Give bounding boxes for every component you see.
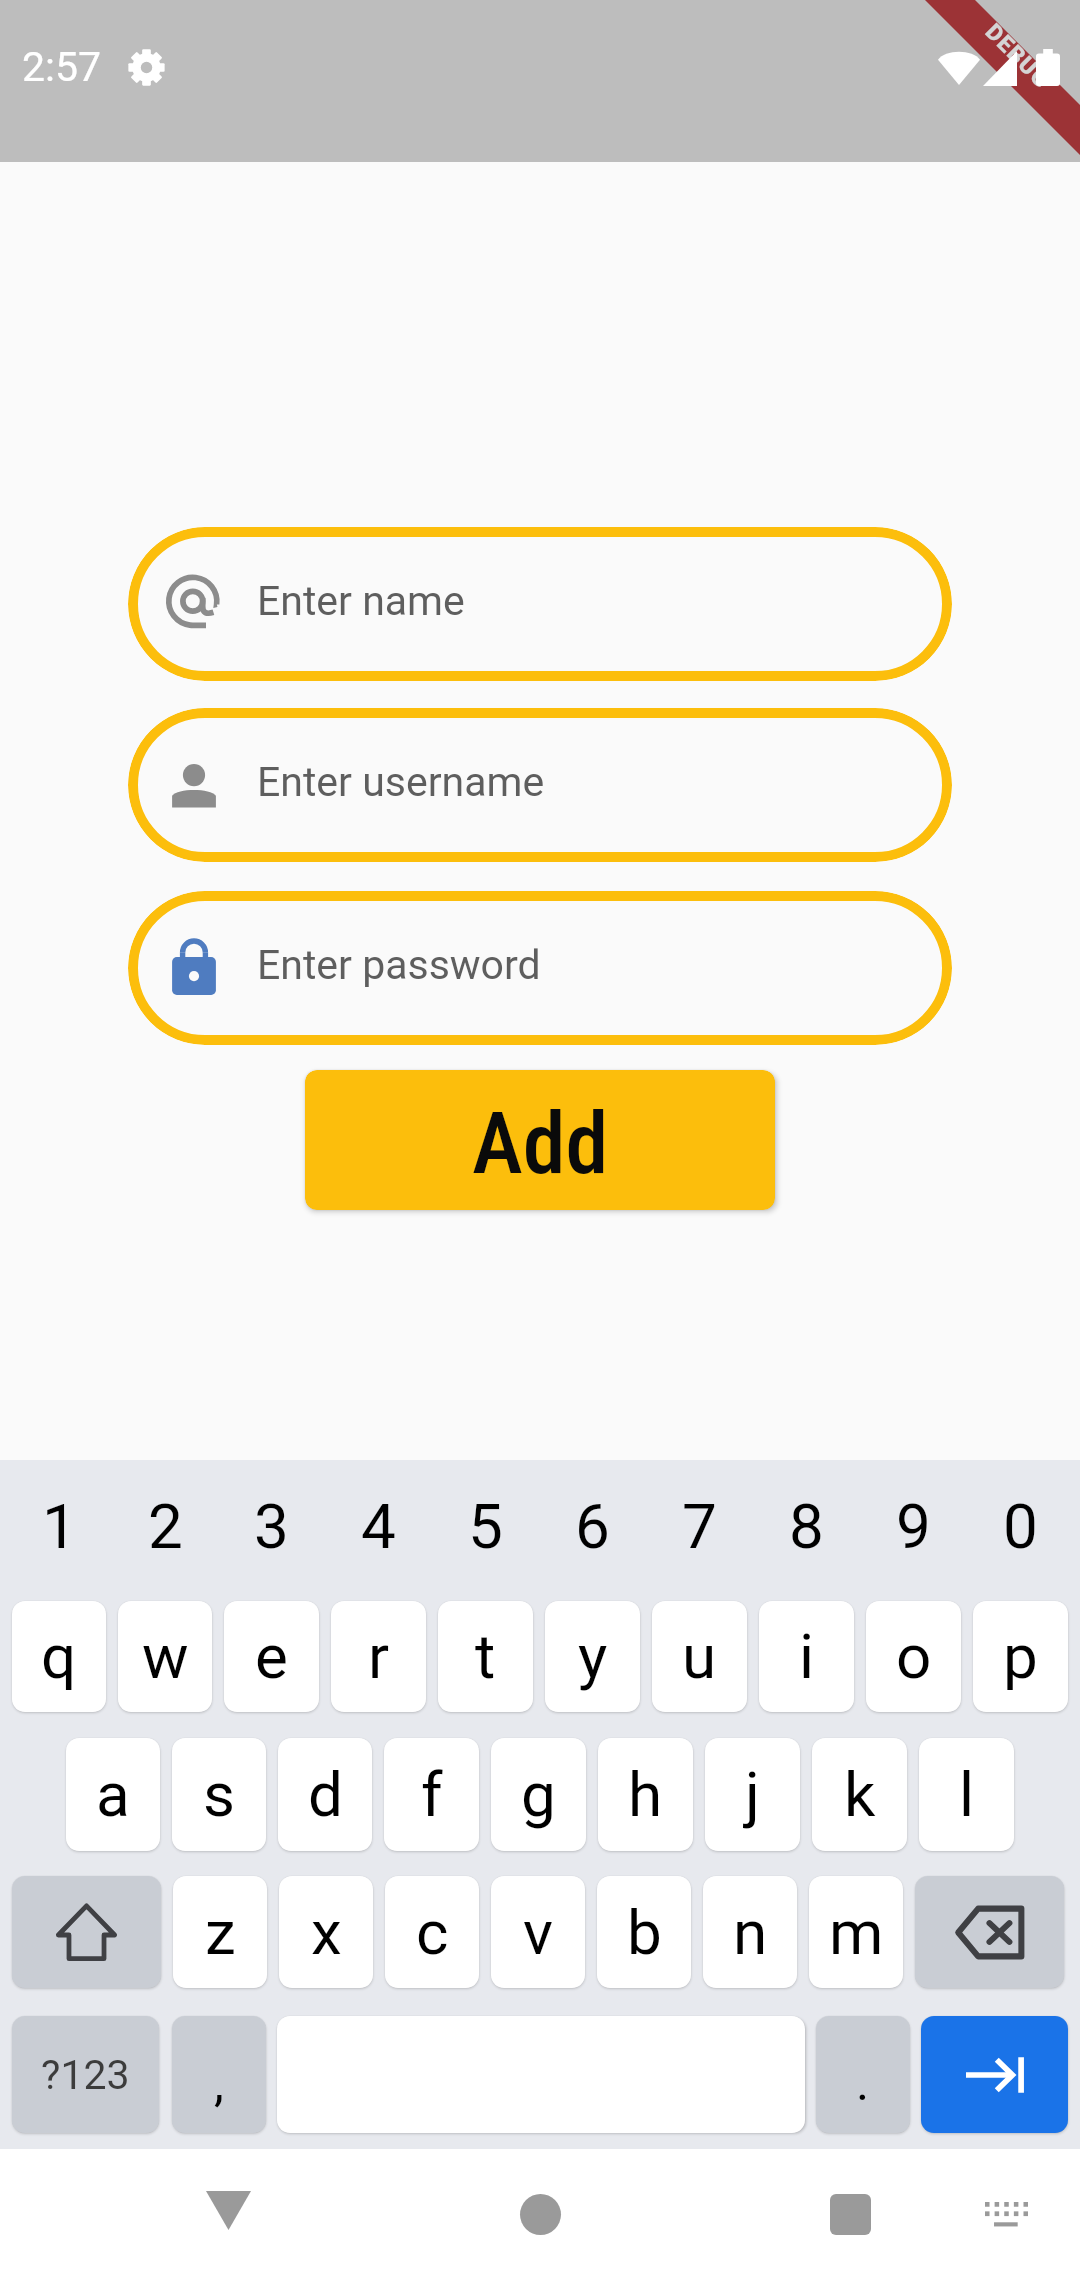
staticText: l [959, 1758, 975, 1831]
staticText: Enter password [257, 941, 541, 989]
button[interactable]: x [279, 1876, 373, 1988]
button[interactable]: Enter username [128, 708, 952, 862]
button[interactable]: r [331, 1601, 426, 1712]
button[interactable]: Back [118, 2149, 338, 2280]
staticText: 6 [575, 1490, 610, 1563]
button[interactable]: ?123 [12, 2016, 159, 2133]
staticText: 2 [148, 1490, 183, 1563]
staticText: 0 [1003, 1490, 1038, 1563]
staticText: g [521, 1758, 556, 1831]
button[interactable]: c [385, 1876, 479, 1988]
staticText: 8 [789, 1490, 824, 1563]
staticText: 5 [468, 1490, 503, 1563]
button[interactable]: b [597, 1876, 691, 1988]
staticText: b [627, 1896, 662, 1969]
staticText: q [41, 1620, 77, 1693]
button[interactable]: q [12, 1601, 106, 1712]
staticText: p [1003, 1620, 1038, 1693]
button[interactable]: s [172, 1738, 266, 1851]
button[interactable]: Backspace [915, 1876, 1064, 1988]
button[interactable]: v [491, 1876, 585, 1988]
button[interactable]: 4 [331, 1460, 426, 1593]
button[interactable]: 3 [224, 1460, 319, 1593]
staticText: f [421, 1758, 443, 1831]
button[interactable]: 0 [973, 1460, 1068, 1593]
button[interactable]: a [66, 1738, 160, 1851]
button[interactable]: p [973, 1601, 1068, 1712]
staticText: m [829, 1896, 884, 1969]
button[interactable]: . [816, 2016, 910, 2133]
button[interactable]: g [491, 1738, 586, 1851]
staticText: ?123 [41, 2051, 130, 2099]
staticText: z [205, 1896, 236, 1969]
button[interactable]: Switch keyboard [946, 2149, 1066, 2280]
button[interactable]: Enter name [128, 527, 952, 681]
staticText: s [203, 1758, 235, 1831]
staticText: , [214, 2054, 224, 2113]
staticText: y [578, 1620, 608, 1693]
staticText: 3 [254, 1490, 289, 1563]
staticText: Enter username [257, 758, 545, 806]
button[interactable]: i [759, 1601, 854, 1712]
button[interactable]: z [173, 1876, 267, 1988]
staticText: Add [472, 1093, 609, 1194]
button[interactable]: , [172, 2016, 266, 2133]
button[interactable]: Add [305, 1070, 775, 1210]
button[interactable]: 7 [652, 1460, 747, 1593]
button[interactable]: Enter password [128, 891, 952, 1045]
staticText: t [475, 1620, 496, 1693]
staticText: i [799, 1620, 815, 1693]
button[interactable]: d [278, 1738, 372, 1851]
staticText: o [896, 1620, 932, 1693]
button[interactable]: f [384, 1738, 479, 1851]
staticText: x [311, 1896, 342, 1969]
button[interactable]: 9 [866, 1460, 961, 1593]
staticText: 7 [682, 1490, 717, 1563]
staticText: d [308, 1758, 343, 1831]
button[interactable]: y [545, 1601, 640, 1712]
button[interactable]: e [224, 1601, 319, 1712]
button[interactable]: n [703, 1876, 797, 1988]
button[interactable]: Enter [921, 2016, 1068, 2133]
staticText: 2:57 [22, 43, 102, 91]
button[interactable]: 6 [545, 1460, 640, 1593]
staticText: DEBUG [980, 18, 1055, 94]
button[interactable]: t [438, 1601, 533, 1712]
staticText: 4 [361, 1490, 396, 1563]
staticText: e [255, 1620, 288, 1693]
button[interactable]: k [812, 1738, 907, 1851]
button[interactable]: u [652, 1601, 747, 1712]
button[interactable]: 1 [12, 1460, 106, 1593]
staticText: u [682, 1620, 717, 1693]
button[interactable]: l [919, 1738, 1014, 1851]
staticText: j [745, 1758, 760, 1831]
staticText: 9 [896, 1490, 931, 1563]
staticText: h [628, 1758, 663, 1831]
staticText: r [368, 1620, 390, 1693]
staticText: w [142, 1620, 189, 1693]
button[interactable]: o [866, 1601, 961, 1712]
button[interactable]: 2 [118, 1460, 212, 1593]
button[interactable]: Shift [12, 1876, 161, 1988]
staticText: c [416, 1896, 449, 1969]
button[interactable]: 5 [438, 1460, 533, 1593]
button[interactable]: j [705, 1738, 800, 1851]
staticText: a [96, 1758, 130, 1831]
button[interactable]: h [598, 1738, 693, 1851]
button[interactable]: w [118, 1601, 212, 1712]
button[interactable]: 8 [759, 1460, 854, 1593]
button[interactable]: m [809, 1876, 903, 1988]
staticText: n [733, 1896, 768, 1969]
button[interactable]: Home [430, 2149, 650, 2280]
staticText: . [856, 2054, 870, 2113]
staticText: 1 [42, 1490, 77, 1563]
staticText: k [844, 1758, 876, 1831]
staticText: v [523, 1896, 554, 1969]
button[interactable]: Recents [740, 2149, 960, 2280]
staticText: Enter name [257, 577, 465, 625]
